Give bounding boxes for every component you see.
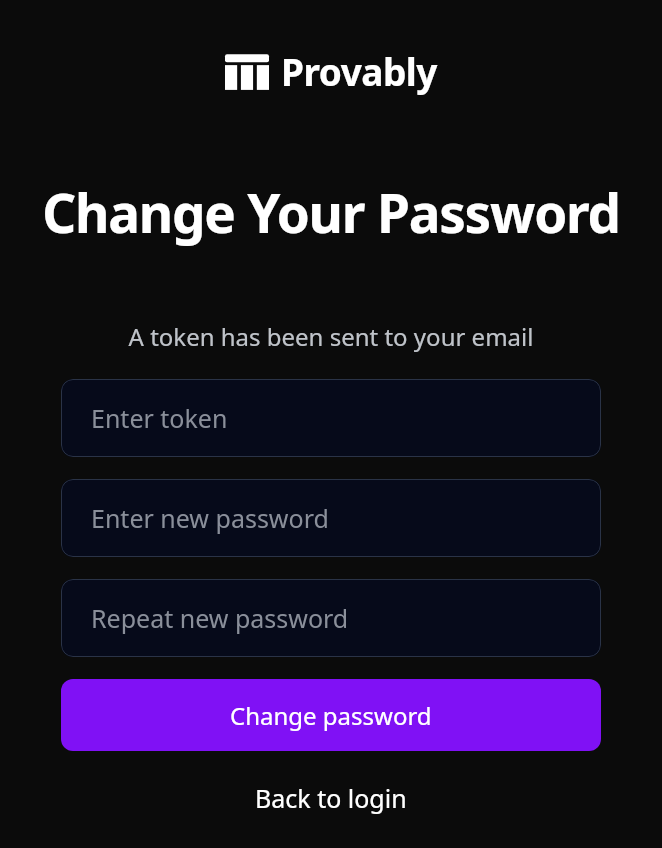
button[interactable]: Provably logo	[221, 44, 441, 98]
staticText: A token has been sent to your email	[16, 320, 646, 353]
staticText: Back to login	[255, 781, 407, 815]
button[interactable]: Back to login	[235, 773, 427, 823]
staticText: Enter new password	[91, 501, 329, 535]
button[interactable]: Enter new password	[61, 479, 601, 557]
staticText: Enter token	[91, 401, 228, 435]
staticText: Provably	[281, 46, 437, 96]
button[interactable]: Enter token	[61, 379, 601, 457]
staticText: Change password	[230, 699, 432, 732]
button[interactable]: Repeat new password	[61, 579, 601, 657]
other: Provably logo	[225, 50, 269, 92]
staticText: Repeat new password	[91, 601, 349, 635]
staticText: Change Your Password	[16, 176, 646, 248]
button[interactable]: Change password	[61, 679, 601, 751]
